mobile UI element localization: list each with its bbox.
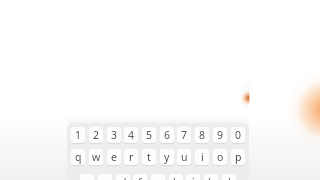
button[interactable]: 2 [89,127,103,143]
button[interactable]: w [89,149,103,165]
staticText: 8 [199,128,206,142]
button[interactable]: 7 [177,127,191,143]
button[interactable]: r [124,149,138,165]
staticText: 5 [146,128,153,142]
staticText: f [138,175,142,180]
button[interactable]: 6 [160,127,174,143]
button[interactable]: 4 [124,127,138,143]
button[interactable]: l [222,174,236,180]
staticText: 1 [75,128,82,142]
button[interactable]: 5 [142,127,156,143]
staticText: e [111,150,117,164]
button[interactable]: k [204,174,218,180]
button[interactable]: 3 [107,127,121,143]
button[interactable]: 0 [231,127,245,143]
button[interactable]: u [177,149,191,165]
staticText: o [217,150,224,164]
button[interactable]: y [160,149,174,165]
staticText: 9 [217,128,224,142]
button[interactable]: p [231,149,245,165]
button[interactable]: 9 [213,127,227,143]
staticText: 7 [181,128,188,142]
button[interactable]: j [186,174,200,180]
staticText: u [181,150,188,164]
button[interactable]: d [116,174,130,180]
button[interactable]: t [142,149,156,165]
button[interactable]: q [71,149,85,165]
staticText: d [120,175,127,180]
staticText: q [75,150,82,164]
staticText: h [173,175,180,180]
staticText: l [228,175,231,180]
staticText: 6 [164,128,171,142]
button[interactable]: i [195,149,209,165]
staticText: w [92,150,101,164]
button[interactable]: f [133,174,147,180]
button[interactable]: 8 [195,127,209,143]
staticText: y [164,150,170,164]
button[interactable]: e [107,149,121,165]
staticText: 4 [128,128,135,142]
staticText: i [201,150,204,164]
staticText: 3 [111,128,118,142]
staticText: 2 [93,128,100,142]
staticText: r [129,150,134,164]
staticText: p [235,150,242,164]
staticText: t [147,150,151,164]
button[interactable]: o [213,149,227,165]
button[interactable]: h [169,174,183,180]
staticText: 0 [235,128,242,142]
button[interactable]: 1 [71,127,85,143]
staticText: j [192,175,195,180]
staticText: k [208,175,214,180]
